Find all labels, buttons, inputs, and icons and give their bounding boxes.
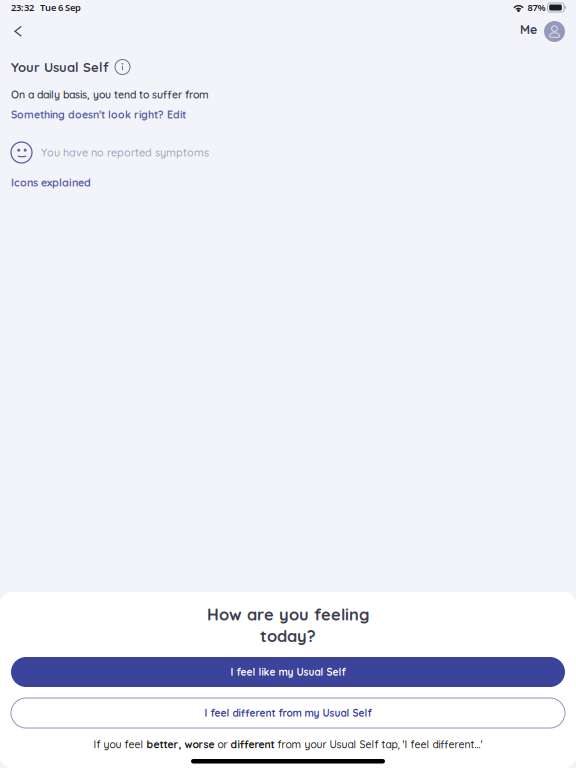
staticText: On a daily basis, you tend to suffer fro… [11,88,209,101]
staticText: I feel different from my Usual Self [204,707,371,719]
staticText: How are you feeling [207,604,369,624]
staticText: today? [260,625,316,646]
button[interactable]: About your usual self [115,59,130,74]
staticText: Me [520,22,537,37]
button[interactable]: Icons explained [11,177,565,188]
button[interactable]: Back [11,15,25,47]
button[interactable]: Something doesn't look right? Edit [11,109,565,120]
staticText: Your Usual Self [11,59,109,75]
button[interactable]: I feel different from my Usual Self [11,698,565,728]
button[interactable]: I feel like my Usual Self [11,657,565,687]
staticText: 23:32 [11,1,34,14]
staticText: You have no reported symptoms [41,146,209,159]
staticText: 87% [523,1,547,14]
staticText: I feel like my Usual Self [230,666,345,678]
staticText: Icons explained [11,176,91,189]
staticText: Tue 6 Sep [34,1,81,14]
staticText: If you feel better, worse or different f… [93,738,482,751]
staticText: Something doesn't look right? Edit [11,108,186,121]
button[interactable]: Me profile [520,15,565,47]
